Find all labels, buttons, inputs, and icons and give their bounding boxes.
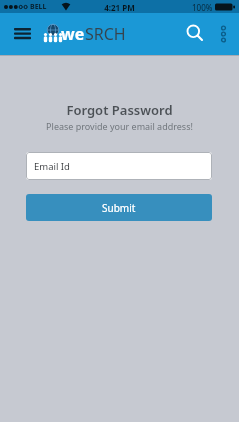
staticText: Submit: [102, 201, 136, 215]
button[interactable]: [8, 21, 36, 46]
staticText: Email Id: [34, 160, 70, 173]
staticText: Forgot Password: [0, 101, 239, 119]
button[interactable]: Email Id: [26, 152, 212, 180]
staticText: 100%: [192, 2, 213, 13]
button[interactable]: Submit: [26, 194, 212, 221]
staticText: we: [61, 23, 85, 45]
staticText: BELL: [30, 2, 47, 12]
staticText: SRCH: [85, 23, 126, 45]
button[interactable]: [216, 23, 232, 47]
staticText: 4:21 PM: [0, 2, 239, 13]
button[interactable]: [183, 21, 207, 47]
staticText: Please provide your email address!: [0, 120, 239, 132]
